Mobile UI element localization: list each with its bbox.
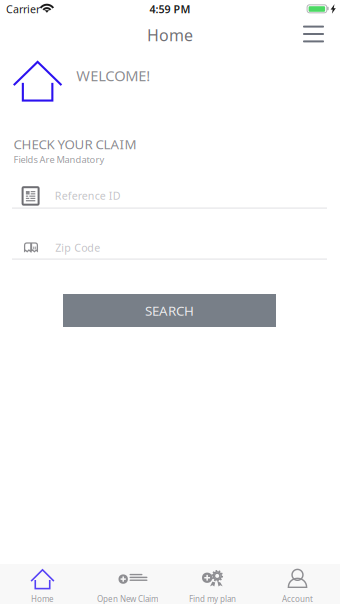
staticText: CHECK YOUR CLAIM bbox=[13, 135, 136, 153]
staticText: Open New Claim bbox=[97, 593, 158, 604]
staticText: Reference ID bbox=[55, 188, 121, 203]
button[interactable]: SEARCH bbox=[63, 294, 276, 327]
staticText: Zip Code bbox=[55, 240, 100, 255]
button[interactable]: Menu bbox=[291, 18, 336, 50]
button[interactable]: Account bbox=[255, 564, 340, 604]
staticText: Carrier bbox=[6, 2, 40, 16]
button[interactable]: Home bbox=[0, 564, 85, 604]
staticText: Find my plan bbox=[189, 593, 236, 604]
staticText: WELCOME! bbox=[76, 66, 150, 85]
staticText: Account bbox=[282, 593, 313, 604]
staticText: Home bbox=[31, 593, 54, 604]
button[interactable]: Open New Claim bbox=[85, 564, 170, 604]
staticText: Fields Are Mandatory bbox=[13, 153, 104, 166]
button[interactable]: Find my plan bbox=[170, 564, 255, 604]
staticText: 4:59 PM bbox=[149, 2, 190, 16]
staticText: SEARCH bbox=[145, 302, 194, 319]
staticText: Home bbox=[147, 24, 193, 46]
